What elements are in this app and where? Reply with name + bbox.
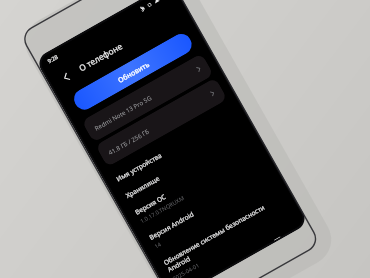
staticText: 2025-04-01 [171,261,201,278]
button[interactable]: Подробная информация о характеристиках [178,221,298,278]
staticText: 14 [153,240,163,251]
staticText: Обновить [116,59,151,85]
staticText: Обновление системы безопасности Android [162,193,287,274]
staticText: 41.8 ГБ / 256 ГБ [107,127,151,156]
staticText: 1.0.17.0.TNQRUXM [139,194,186,225]
staticText: О телефоне [77,40,125,74]
staticText: Redmi Note 13 Pro 5G [93,93,153,132]
staticText: 9:28 [46,52,60,65]
staticText: Хранилище [124,174,161,200]
button[interactable]: 41.8 ГБ / 256 ГБ [95,77,228,167]
button[interactable]: Версия ОС [131,138,262,230]
button[interactable]: Redmi Note 13 Pro 5G [81,53,214,143]
staticText: Версия Android [148,209,196,242]
button[interactable]: Хранилище [122,122,248,204]
button[interactable]: Имя устройства [112,105,238,188]
staticText: Имя устройства [115,151,163,183]
button[interactable]: Обновление системы безопасности Android [159,189,294,278]
staticText: Версия ОС [133,192,168,217]
button[interactable]: Обновить [70,30,195,113]
button[interactable]: Назад [56,66,77,87]
button[interactable]: Версия Android [145,164,276,255]
